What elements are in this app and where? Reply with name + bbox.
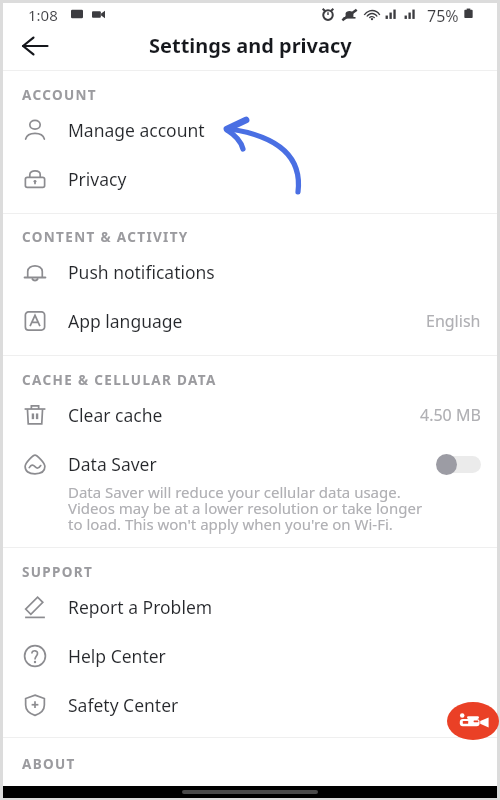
- staticText: ACCOUNT: [22, 86, 97, 104]
- staticText: App language: [68, 309, 183, 333]
- staticText: Data Saver: [68, 452, 157, 476]
- button[interactable]: App language: [3, 297, 497, 345]
- staticText: Report a Problem: [68, 595, 213, 619]
- button[interactable]: Back: [15, 26, 55, 66]
- staticText: Clear cache: [68, 403, 163, 427]
- staticText: 1:08: [28, 5, 58, 25]
- button[interactable]: Clear cache: [3, 391, 497, 439]
- staticText: CACHE & CELLULAR DATA: [22, 371, 217, 389]
- staticText: SUPPORT: [22, 563, 94, 581]
- button[interactable]: Privacy: [3, 155, 497, 203]
- staticText: 4.50 MB: [420, 404, 481, 426]
- staticText: Manage account: [68, 118, 205, 142]
- button[interactable]: Safety Center: [3, 681, 497, 729]
- staticText: CONTENT & ACTIVITY: [22, 228, 189, 246]
- staticText: ABOUT: [22, 755, 76, 773]
- staticText: Help Center: [68, 644, 166, 668]
- staticText: 75%: [427, 5, 459, 27]
- button[interactable]: Manage account: [3, 106, 497, 154]
- staticText: Privacy: [68, 167, 127, 191]
- staticText: Settings and privacy: [149, 32, 352, 59]
- button[interactable]: Push notifications: [3, 248, 497, 296]
- staticText: Data Saver will reduce your cellular dat…: [68, 482, 423, 534]
- staticText: Safety Center: [68, 693, 179, 717]
- button[interactable]: Data Saver: [3, 440, 497, 540]
- button[interactable]: Help Center: [3, 632, 497, 680]
- staticText: English: [426, 310, 481, 332]
- button[interactable]: Record video: [447, 702, 499, 740]
- staticText: Push notifications: [68, 260, 215, 284]
- button[interactable]: Report a Problem: [3, 583, 497, 631]
